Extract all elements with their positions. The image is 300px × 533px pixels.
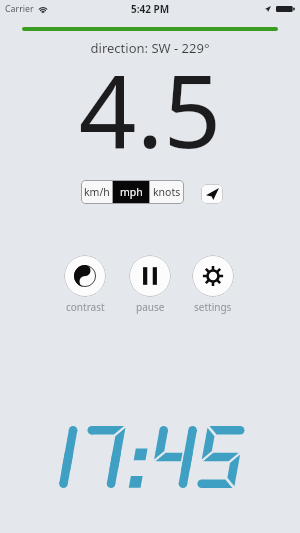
button[interactable]: knots	[150, 180, 184, 204]
button[interactable]: km/h	[81, 180, 112, 204]
staticText: knots	[153, 185, 181, 199]
staticText: pause	[136, 300, 165, 314]
staticText: direction: SW - 229°	[0, 39, 300, 57]
button[interactable]: settings	[192, 255, 234, 314]
staticText: Carrier	[5, 3, 34, 15]
button[interactable]: Use current location	[201, 184, 223, 204]
staticText: contrast	[66, 300, 105, 314]
button[interactable]: pause	[129, 255, 171, 314]
staticText: mph	[120, 185, 143, 199]
button[interactable]: mph	[113, 180, 149, 204]
staticText: 4.5	[0, 40, 300, 178]
button[interactable]: contrast	[64, 255, 106, 314]
staticText: km/h	[84, 185, 110, 199]
staticText: 5:42 PM	[131, 2, 170, 16]
staticText: settings	[194, 300, 232, 314]
